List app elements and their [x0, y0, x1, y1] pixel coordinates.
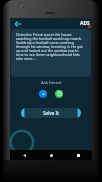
button[interactable]: Detective Poirot was in his house watchi…: [11, 29, 91, 77]
button[interactable]: Back: [13, 19, 23, 29]
button[interactable]: Home: [38, 150, 65, 160]
staticText: Ask friend: [10, 80, 92, 86]
button[interactable]: Ads: [80, 20, 90, 27]
button[interactable]: Solve It: [21, 108, 81, 118]
staticText: Detective Poirot was in his house watchi…: [16, 32, 86, 61]
button[interactable]: Back: [10, 150, 38, 160]
button[interactable]: Recents: [65, 150, 92, 160]
staticText: ADS: [80, 20, 90, 27]
staticText: Solve It: [43, 110, 59, 116]
button[interactable]: Share on WhatsApp: [55, 90, 63, 98]
button[interactable]: Share on Messenger: [39, 90, 47, 98]
